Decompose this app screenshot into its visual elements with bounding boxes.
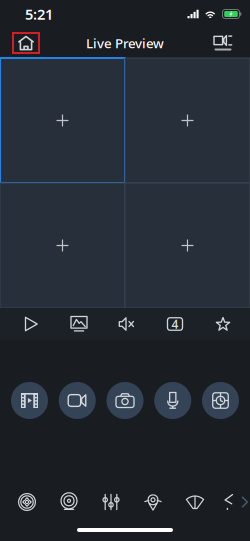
- button[interactable]: Clips: [11, 382, 48, 419]
- button[interactable]: Snapshot: [106, 382, 143, 419]
- staticText: 4: [171, 316, 178, 332]
- button[interactable]: Snapshot: [59, 308, 99, 340]
- button[interactable]: Add camera: [125, 183, 250, 308]
- button[interactable]: Record: [59, 382, 96, 419]
- button[interactable]: More: [238, 482, 250, 522]
- button[interactable]: Pan tilt: [10, 482, 44, 522]
- button[interactable]: Siren: [220, 482, 236, 522]
- button[interactable]: Camera list: [208, 30, 238, 56]
- button[interactable]: PTZ controls: [202, 382, 239, 419]
- button[interactable]: Spotlight: [52, 482, 86, 522]
- button[interactable]: Microphone: [154, 382, 191, 419]
- button[interactable]: Favorite: [203, 308, 243, 340]
- button[interactable]: Mute: [107, 308, 147, 340]
- button[interactable]: Wiper: [178, 482, 212, 522]
- staticText: Live Preview: [86, 34, 164, 52]
- button[interactable]: Spotlight tracking: [136, 482, 170, 522]
- button[interactable]: Play: [11, 308, 51, 340]
- button[interactable]: Add camera: [125, 58, 250, 183]
- button[interactable]: Add camera: [0, 58, 125, 183]
- button[interactable]: Adjustments: [94, 482, 128, 522]
- button[interactable]: Add camera: [0, 183, 125, 308]
- button[interactable]: Home: [10, 30, 42, 56]
- staticText: 5:21: [25, 4, 53, 24]
- button[interactable]: Layout 4: [155, 308, 195, 340]
